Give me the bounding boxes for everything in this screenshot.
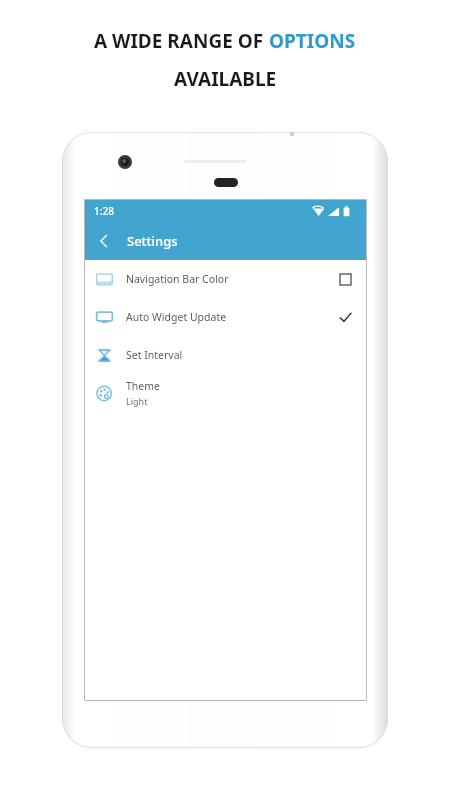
staticText: Navigation Bar Color [126,272,229,286]
staticText: Light [126,395,148,407]
button[interactable]: Auto Widget Update [85,298,366,336]
staticText: Theme [126,379,160,393]
button[interactable]: Set Interval [85,336,366,374]
button[interactable]: Theme [85,374,366,412]
staticText: AVAILABLE [174,66,277,92]
button[interactable]: Navigation Bar Color [85,260,366,298]
staticText: Settings [127,232,178,250]
staticText: OPTIONS [269,28,356,54]
staticText: A WIDE RANGE OF [94,28,269,54]
button[interactable]: Back [85,222,123,260]
staticText: 1:28 [94,204,114,218]
staticText: Auto Widget Update [126,310,227,324]
staticText: Set Interval [126,348,183,362]
